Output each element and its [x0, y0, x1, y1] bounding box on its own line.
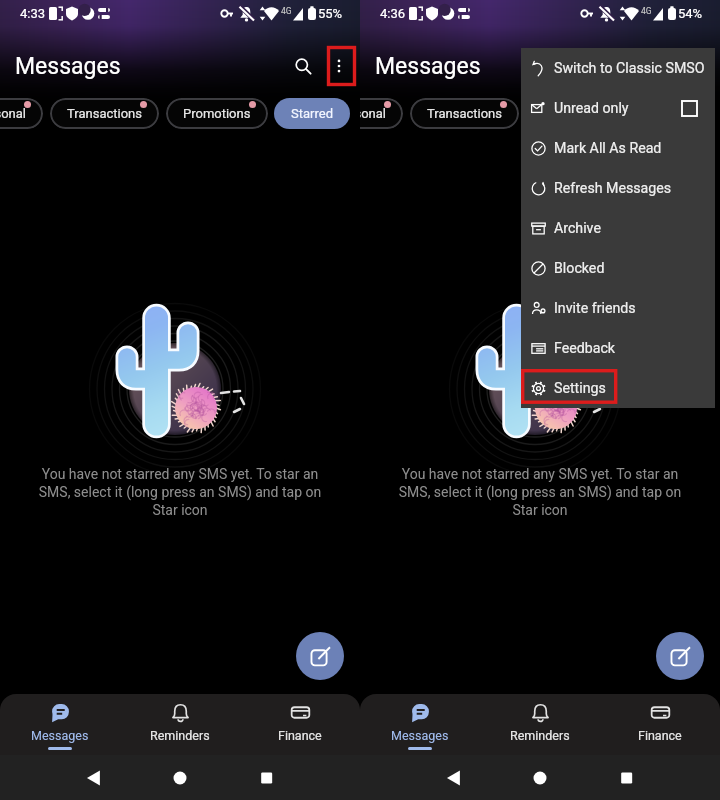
- staticText: Starred: [291, 106, 333, 121]
- button[interactable]: More options: [681, 48, 717, 84]
- staticText: Transactions: [67, 106, 142, 121]
- staticText: Messages: [391, 728, 449, 743]
- button[interactable]: Blocked: [521, 248, 715, 288]
- staticText: 55%: [318, 6, 343, 21]
- staticText: Reminders: [510, 728, 570, 743]
- button[interactable]: Invite friends: [521, 288, 715, 328]
- button[interactable]: Switch to Classic SMSO: [521, 48, 715, 88]
- staticText: Messages: [31, 728, 89, 743]
- button[interactable]: Transactions: [410, 98, 519, 129]
- button[interactable]: Mark All As Read: [521, 128, 715, 168]
- staticText: Personal: [360, 106, 386, 121]
- button[interactable]: Personal: [0, 98, 43, 129]
- staticText: Settings: [554, 380, 606, 397]
- staticText: Messages: [375, 53, 481, 80]
- staticText: Promotions: [543, 106, 611, 121]
- button[interactable]: Messages: [0, 694, 120, 755]
- staticText: Messages: [15, 53, 121, 80]
- button[interactable]: Search: [285, 48, 321, 84]
- staticText: Personal: [0, 106, 26, 121]
- button[interactable]: Refresh Messages: [521, 168, 715, 208]
- button[interactable]: Unread only: [521, 88, 715, 128]
- button[interactable]: Finance: [240, 694, 360, 755]
- button[interactable]: More options: [321, 48, 357, 84]
- staticText: Reminders: [150, 728, 210, 743]
- button[interactable]: Reminders: [120, 694, 240, 755]
- button[interactable]: Transactions: [50, 98, 159, 129]
- button[interactable]: Settings: [521, 368, 715, 408]
- staticText: Finance: [638, 728, 682, 743]
- staticText: 4G: [641, 6, 652, 16]
- button[interactable]: Feedback: [521, 328, 715, 368]
- staticText: Finance: [278, 728, 322, 743]
- button[interactable]: Promotions: [526, 98, 628, 129]
- staticText: Promotions: [183, 106, 251, 121]
- button[interactable]: Reminders: [480, 694, 600, 755]
- staticText: Switch to Classic SMSO: [554, 60, 705, 77]
- staticText: 54%: [678, 6, 703, 21]
- staticText: 4:33: [20, 6, 46, 21]
- staticText: Unread only: [554, 100, 629, 117]
- staticText: 4:36: [380, 6, 406, 21]
- staticText: Transactions: [427, 106, 502, 121]
- button[interactable]: Promotions: [166, 98, 268, 129]
- button[interactable]: Starred: [634, 98, 710, 129]
- staticText: Feedback: [554, 340, 616, 357]
- staticText: 4G: [281, 6, 292, 16]
- staticText: Refresh Messages: [554, 180, 672, 197]
- staticText: Invite friends: [554, 300, 636, 317]
- staticText: Blocked: [554, 260, 605, 277]
- button[interactable]: Compose new message: [296, 632, 344, 680]
- button[interactable]: Personal: [360, 98, 403, 129]
- staticText: Starred: [651, 106, 693, 121]
- button[interactable]: Messages: [360, 694, 480, 755]
- staticText: You have not starred any SMS yet. To sta…: [25, 466, 335, 519]
- staticText: You have not starred any SMS yet. To sta…: [385, 466, 695, 519]
- button[interactable]: Archive: [521, 208, 715, 248]
- staticText: Mark All As Read: [554, 140, 662, 157]
- button[interactable]: Finance: [600, 694, 720, 755]
- button[interactable]: Compose new message: [656, 632, 704, 680]
- button[interactable]: Starred: [274, 98, 350, 129]
- button[interactable]: Search: [645, 48, 681, 84]
- staticText: Archive: [554, 220, 601, 237]
